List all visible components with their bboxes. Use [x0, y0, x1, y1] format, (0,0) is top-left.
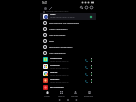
button[interactable]: Comptes	[68, 90, 82, 98]
staticText: Documents	[84, 95, 94, 97]
staticText: Lorem ipsum dolor sit amet	[50, 16, 75, 19]
staticText: Todoist	[50, 71, 58, 74]
button[interactable]: Your application	[40, 50, 96, 56]
staticText: Your application	[49, 52, 66, 55]
button[interactable]: Services	[54, 90, 68, 98]
button[interactable]: Informations sur l'application	[40, 20, 96, 26]
button[interactable]: Call	[84, 65, 88, 69]
button[interactable]: Generation application	[40, 44, 96, 50]
staticText: Comptes	[71, 95, 79, 97]
button[interactable]: Mes documents	[40, 32, 96, 38]
staticText: Lorem ipsum dolor sit	[50, 74, 69, 76]
button[interactable]: Profile	[43, 6, 47, 10]
button[interactable]: More options	[89, 5, 94, 10]
button[interactable]: Lorem application	[40, 26, 96, 32]
staticText: Lorem ipsum dolor sit	[50, 60, 69, 62]
button[interactable]: Call	[84, 79, 88, 83]
staticText: Data	[49, 40, 54, 43]
staticText: Lorem ipsum dolor sit	[50, 81, 69, 83]
button[interactable]: More options	[89, 58, 93, 62]
button[interactable]: Todoist	[40, 70, 96, 77]
button[interactable]: Search	[79, 5, 84, 10]
staticText: Services	[58, 95, 65, 97]
button[interactable]: Edit	[48, 6, 52, 10]
button[interactable]: Fabregas	[40, 77, 96, 84]
button[interactable]: More options	[89, 72, 93, 76]
button[interactable]: Hello	[40, 13, 96, 20]
button[interactable]: More options	[89, 65, 93, 69]
staticText: Lorem ipsum dolor sit	[50, 67, 69, 69]
button[interactable]: Call	[84, 72, 88, 76]
button[interactable]: Notifications	[84, 5, 89, 10]
button[interactable]: MoneyMore	[40, 56, 96, 63]
button[interactable]: Documents	[82, 90, 96, 98]
staticText: Hello	[50, 13, 56, 16]
button[interactable]: Woohoob	[40, 63, 96, 70]
other: Online	[89, 15, 93, 19]
button[interactable]: Accueil	[40, 90, 54, 98]
staticText: Accueil	[44, 95, 50, 97]
staticText: Woohoob	[50, 64, 60, 67]
staticText: BRI Password	[50, 86, 64, 89]
staticText: Generation application	[49, 46, 73, 49]
button[interactable]: Another app name here	[40, 10, 96, 13]
button[interactable]: Data	[40, 38, 96, 44]
staticText: Mes documents	[49, 34, 66, 37]
staticText: MoneyMore	[50, 57, 63, 60]
button[interactable]: More options	[89, 79, 93, 83]
staticText: Another app name here	[46, 10, 69, 13]
staticText: Fabregas	[50, 78, 60, 81]
staticText: 9:41	[42, 1, 48, 5]
staticText: Informations sur l'application	[49, 22, 80, 25]
staticText: Lorem application	[49, 28, 68, 31]
button[interactable]: BRI Password	[40, 84, 96, 90]
button[interactable]: Call	[84, 58, 88, 62]
